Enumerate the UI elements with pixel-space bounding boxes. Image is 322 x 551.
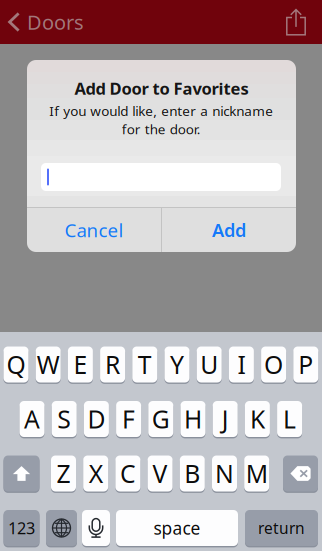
button[interactable]: N [212,454,237,492]
staticText: space [153,516,200,540]
button[interactable]: I [229,345,254,383]
staticText: P [298,348,313,381]
staticText: Doors [27,8,84,36]
staticText: Add [212,218,246,242]
staticText: O [264,348,283,381]
button[interactable]: D [84,400,109,438]
staticText: L [283,402,296,436]
button[interactable]: Share [272,0,322,44]
staticText: A [24,402,40,436]
staticText: Y [170,348,184,381]
button[interactable]: Doors [0,0,94,44]
staticText: N [215,457,234,490]
button[interactable]: A [19,400,44,438]
button[interactable]: Y [164,345,189,383]
staticText: C [120,457,136,490]
staticText: E [73,348,87,381]
button[interactable]: J [213,400,238,438]
staticText: Cancel [64,217,123,243]
button[interactable]: C [115,454,140,492]
staticText: R [105,348,120,381]
staticText: K [250,402,265,436]
button[interactable]: U [197,345,222,383]
staticText: H [184,402,202,436]
staticText: M [246,457,268,490]
button[interactable]: H [180,400,205,438]
button[interactable] [3,454,39,492]
staticText: W [37,348,60,381]
button[interactable] [283,454,318,492]
button[interactable]: E [68,345,93,383]
button[interactable]: T [132,345,157,383]
button[interactable]: X [83,454,108,492]
staticText: G [152,402,170,436]
staticText: D [87,402,105,436]
button[interactable]: Z [51,454,76,492]
staticText: return [258,517,305,539]
staticText: B [184,457,200,490]
staticText: J [222,402,229,436]
staticText: If you would like, enter a nickname for … [49,101,273,138]
button[interactable]: 123 [3,509,39,547]
button[interactable] [82,509,110,547]
button[interactable]: space [116,509,238,547]
staticText: S [57,402,71,436]
staticText: 123 [8,517,35,539]
button[interactable]: Cancel [27,208,161,252]
staticText: X [89,457,103,490]
staticText: V [153,457,168,490]
button[interactable]: L [277,400,302,438]
staticText: T [138,348,152,381]
button[interactable]: F [116,400,141,438]
button[interactable]: P [293,345,318,383]
button[interactable]: return [245,509,318,547]
button[interactable]: Q [3,345,28,383]
button[interactable]: S [52,400,77,438]
button[interactable]: O [261,345,286,383]
staticText: I [237,348,245,381]
staticText: Q [6,348,25,381]
staticText: Z [56,457,70,490]
button[interactable]: Add [162,208,296,252]
button[interactable]: R [100,345,125,383]
button[interactable]: V [148,454,173,492]
staticText: F [122,402,135,436]
staticText: Add Door to Favorites [74,77,248,99]
button[interactable] [46,509,77,547]
button[interactable]: B [180,454,205,492]
button[interactable]: G [148,400,173,438]
button[interactable]: M [244,454,269,492]
button[interactable]: K [245,400,270,438]
button[interactable]: W [36,345,61,383]
staticText: U [200,348,218,381]
